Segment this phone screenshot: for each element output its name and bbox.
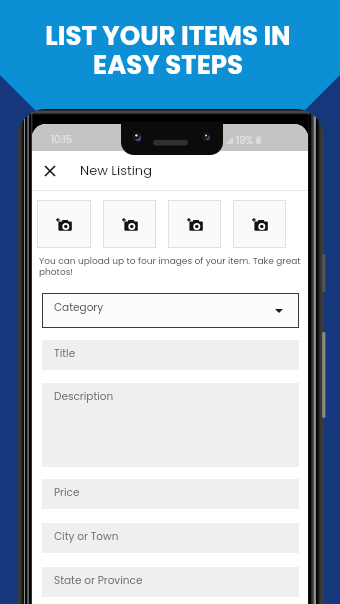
staticText: 19% [236,133,254,147]
button[interactable]: Price [42,479,299,509]
staticText: 10:15 [51,132,73,146]
staticText: Price [54,485,80,500]
button[interactable]: Description [42,383,299,467]
button[interactable]: Add photo [168,200,221,248]
button[interactable]: Add photo [37,200,91,248]
staticText: New Listing [80,161,152,179]
staticText: City or Town [54,529,119,544]
staticText: LIST YOUR ITEMS IN EASY STEPS [0,18,338,83]
button[interactable]: Title [42,340,299,370]
button[interactable]: Add photo [233,200,286,248]
button[interactable]: City or Town [42,523,299,553]
button[interactable]: Add photo [103,200,156,248]
button[interactable]: State or Province [42,567,299,597]
button[interactable]: Category [42,293,299,328]
button[interactable]: Close [38,159,62,183]
staticText: State or Province [54,573,143,588]
staticText: Title [54,346,76,361]
staticText: Description [54,389,114,404]
staticText: You can upload up to four images of your… [39,255,301,278]
staticText: Category [54,300,104,315]
